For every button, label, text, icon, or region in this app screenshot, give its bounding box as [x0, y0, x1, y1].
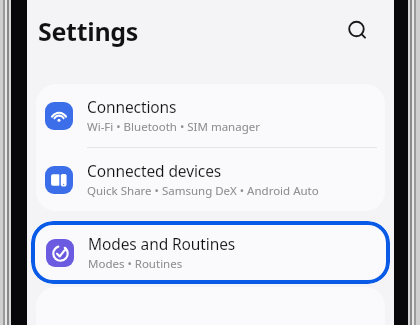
button[interactable]: Modes and Routines: [31, 221, 390, 284]
button[interactable]: Connected devices: [36, 148, 385, 211]
staticText: Modes and Routines: [88, 233, 236, 254]
staticText: Settings: [38, 14, 139, 48]
staticText: Modes • Routines: [88, 256, 183, 272]
button[interactable]: Search: [340, 13, 376, 49]
staticText: Connections: [87, 96, 177, 117]
staticText: Connected devices: [87, 160, 222, 181]
staticText: Quick Share • Samsung DeX • Android Auto: [87, 183, 319, 199]
button[interactable]: Connections: [36, 84, 385, 147]
staticText: Wi-Fi • Bluetooth • SIM manager: [87, 119, 260, 135]
